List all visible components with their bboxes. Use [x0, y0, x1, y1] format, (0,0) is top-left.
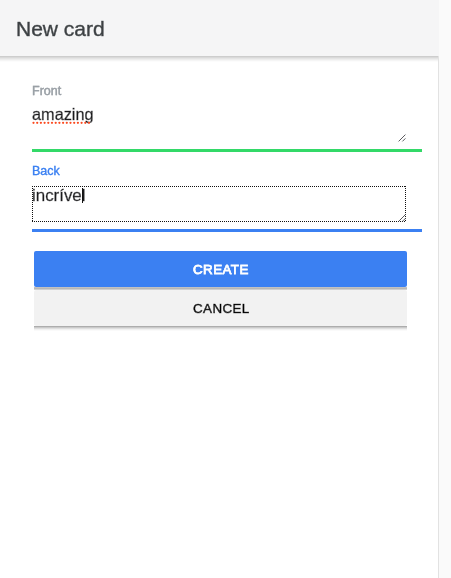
other: Resize Front field [398, 134, 407, 143]
staticText: incrível [32, 186, 86, 205]
staticText: amazing [32, 105, 94, 123]
staticText: incrível [32, 186, 86, 205]
staticText: CREATE [193, 262, 249, 277]
staticText: CANCEL [193, 301, 250, 316]
staticText: Back [32, 164, 60, 178]
staticText: New card [16, 17, 105, 40]
staticText: CREATE [193, 262, 249, 277]
staticText: Front [32, 84, 62, 98]
staticText: Front [32, 84, 62, 98]
button[interactable]: CANCEL [34, 290, 407, 326]
staticText: New card [16, 17, 105, 40]
button[interactable]: CREATE [34, 251, 407, 287]
staticText: Back [32, 164, 60, 178]
staticText: amazing [32, 105, 94, 123]
staticText: CANCEL [193, 301, 250, 316]
other: Resize Back field [398, 214, 407, 223]
